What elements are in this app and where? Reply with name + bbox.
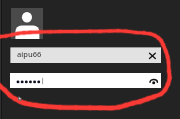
button[interactable]: Show password [10,73,161,88]
button[interactable]: Clear text [149,53,156,59]
button[interactable]: Profile picture [11,8,43,39]
button[interactable]: Show password [149,78,158,87]
button[interactable]: aipu66 [10,47,161,63]
staticText: aipu66 [17,49,42,59]
